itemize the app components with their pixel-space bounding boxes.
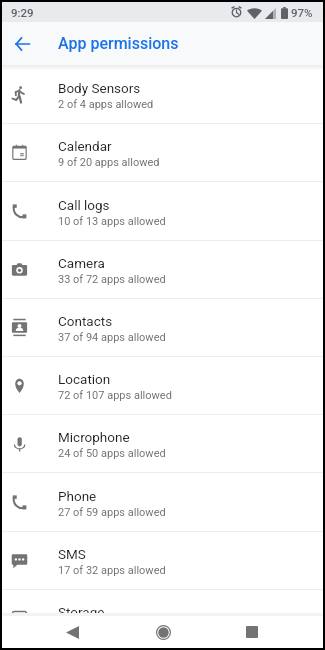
staticText: Phone xyxy=(58,488,97,504)
staticText: 10 of 13 apps allowed xyxy=(58,215,166,228)
button[interactable]: Home xyxy=(151,616,175,648)
staticText: Call logs xyxy=(58,197,110,213)
staticText: Storage xyxy=(58,604,105,613)
button[interactable]: Microphone xyxy=(2,415,323,473)
staticText: 97% xyxy=(291,6,313,19)
button[interactable]: Recents xyxy=(240,616,264,648)
staticText: 37 of 94 apps allowed xyxy=(58,331,166,344)
button[interactable]: Storage xyxy=(2,590,323,613)
button[interactable]: Call logs xyxy=(2,183,323,241)
staticText: 33 of 72 apps allowed xyxy=(58,273,166,286)
button[interactable]: Calendar xyxy=(2,124,323,182)
staticText: Microphone xyxy=(58,429,130,445)
button[interactable]: Back xyxy=(2,22,43,65)
button[interactable]: Phone xyxy=(2,474,323,532)
button[interactable]: Back xyxy=(60,616,84,648)
button[interactable]: Location xyxy=(2,357,323,415)
staticText: 2 of 4 apps allowed xyxy=(58,98,154,111)
staticText: Calendar xyxy=(58,138,112,154)
staticText: 72 of 107 apps allowed xyxy=(58,389,172,402)
staticText: SMS xyxy=(58,546,86,562)
staticText: 24 of 50 apps allowed xyxy=(58,447,166,460)
button[interactable]: Body Sensors xyxy=(2,66,323,124)
staticText: 9:29 xyxy=(11,6,34,19)
button[interactable]: SMS xyxy=(2,532,323,590)
staticText: 27 of 59 apps allowed xyxy=(58,506,166,519)
staticText: Body Sensors xyxy=(58,80,141,96)
staticText: App permissions xyxy=(58,34,179,53)
staticText: 9 of 20 apps allowed xyxy=(58,156,160,169)
button[interactable]: Camera xyxy=(2,241,323,299)
staticText: 17 of 32 apps allowed xyxy=(58,564,166,577)
button[interactable]: Contacts xyxy=(2,299,323,357)
staticText: Location xyxy=(58,371,111,387)
staticText: Contacts xyxy=(58,313,113,329)
staticText: Camera xyxy=(58,255,105,271)
